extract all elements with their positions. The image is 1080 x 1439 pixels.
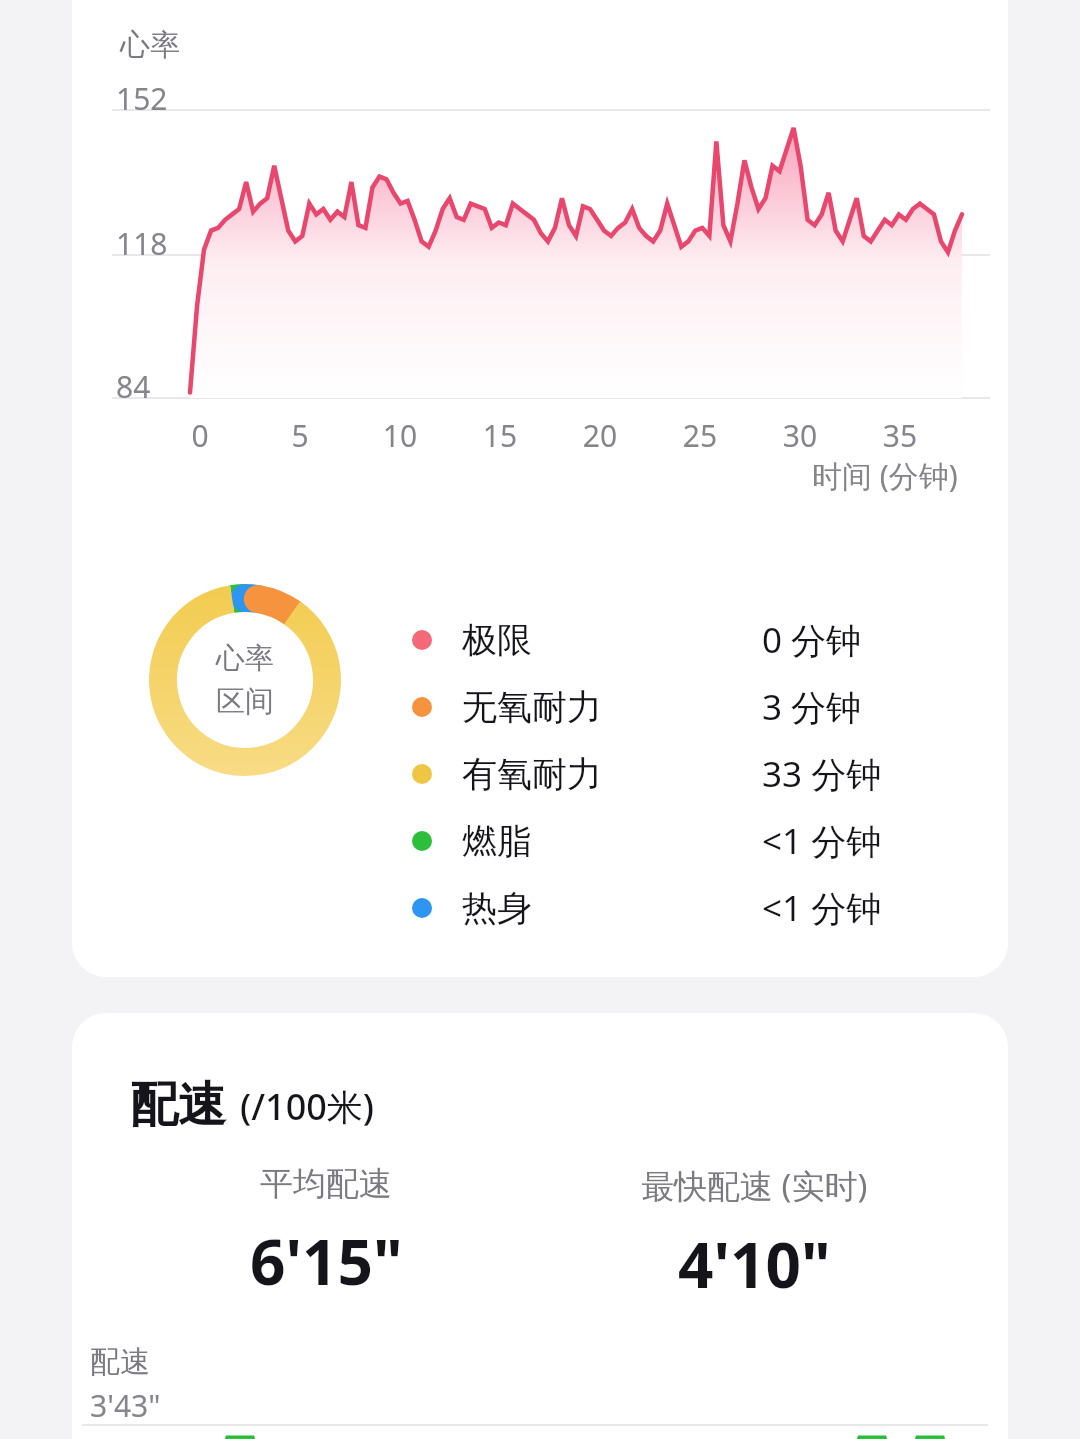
staticText: 有氧耐力 bbox=[462, 752, 602, 796]
staticText: 118 bbox=[116, 223, 168, 264]
button[interactable]: 燃脂 bbox=[412, 813, 992, 869]
staticText: <1 分钟 bbox=[762, 817, 882, 865]
button[interactable]: 热身 bbox=[412, 880, 992, 936]
staticText: 0 bbox=[180, 415, 220, 456]
staticText: 3'43" bbox=[90, 1385, 161, 1426]
staticText: 25 bbox=[680, 415, 720, 456]
staticText: 最快配速 (实时) bbox=[641, 1163, 868, 1208]
button[interactable]: 最快配速 (实时) bbox=[540, 1163, 968, 1306]
staticText: 热身 bbox=[462, 886, 532, 930]
button[interactable]: 无氧耐力 bbox=[412, 679, 992, 735]
button[interactable]: 有氧耐力 bbox=[412, 746, 992, 802]
staticText: 配速 bbox=[90, 1343, 150, 1381]
staticText: 区间 bbox=[216, 683, 274, 720]
staticText: 平均配速 bbox=[260, 1163, 392, 1205]
button[interactable]: 心率 bbox=[72, 0, 1008, 977]
staticText: 4'10" bbox=[678, 1222, 831, 1306]
staticText: 84 bbox=[116, 366, 151, 407]
staticText: 配速 bbox=[130, 1075, 226, 1135]
staticText: 3 分钟 bbox=[762, 683, 862, 731]
staticText: 152 bbox=[116, 78, 168, 119]
staticText: 5 bbox=[280, 415, 320, 456]
staticText: 无氧耐力 bbox=[462, 685, 602, 729]
staticText: 35 bbox=[880, 415, 920, 456]
staticText: 20 bbox=[580, 415, 620, 456]
staticText: 极限 bbox=[462, 618, 532, 662]
staticText: 15 bbox=[480, 415, 520, 456]
staticText: 0 分钟 bbox=[762, 616, 862, 664]
staticText: 33 分钟 bbox=[762, 750, 882, 798]
button[interactable]: 平均配速 bbox=[112, 1163, 540, 1303]
staticText: 心率 bbox=[216, 640, 274, 677]
button[interactable]: 极限 bbox=[412, 612, 992, 668]
staticText: <1 分钟 bbox=[762, 884, 882, 932]
staticText: 10 bbox=[380, 415, 420, 456]
staticText: 6'15" bbox=[250, 1219, 403, 1303]
staticText: (/100米) bbox=[240, 1082, 375, 1131]
staticText: 时间 (分钟) bbox=[812, 455, 958, 496]
staticText: 心率 bbox=[120, 26, 180, 64]
staticText: 30 bbox=[780, 415, 820, 456]
staticText: 燃脂 bbox=[462, 819, 532, 863]
button[interactable]: 配速 bbox=[72, 1013, 1008, 1439]
